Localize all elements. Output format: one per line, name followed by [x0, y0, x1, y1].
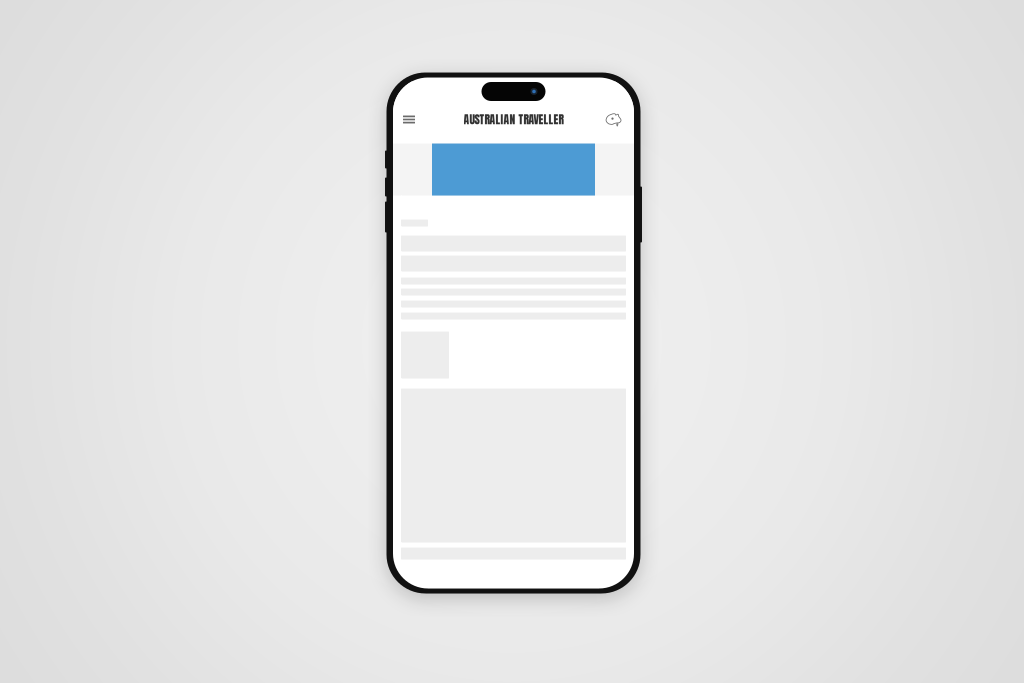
button[interactable]: Menu — [396, 104, 422, 134]
button[interactable]: AUSTRALIAN TRAVELLER — [459, 104, 567, 135]
staticText: AUSTRALIAN TRAVELLER — [463, 111, 563, 128]
button[interactable]: Advertisement — [393, 143, 634, 195]
button[interactable]: Explore destinations — [599, 104, 627, 134]
